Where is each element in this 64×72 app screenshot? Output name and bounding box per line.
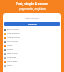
staticText: Mobile money <box>7 36 20 39</box>
button[interactable]: Direct debit <box>3 60 61 64</box>
staticText: Saved cards <box>7 52 18 55</box>
staticText: Bank transfer <box>7 28 20 31</box>
staticText: Fast, simple & secure <box>16 2 48 6</box>
button[interactable]: Scheduled <box>3 56 61 60</box>
button[interactable]: Card payment <box>3 32 61 36</box>
button[interactable]: Mobile money <box>3 36 61 40</box>
staticText: Continue <box>28 23 37 26</box>
button[interactable]: Continue <box>4 22 60 26</box>
button[interactable]: Cash pickup <box>3 40 61 44</box>
button[interactable]: Wallet <box>3 44 61 48</box>
button[interactable]: Bank transfer <box>3 28 61 32</box>
button[interactable]: Saved cards <box>3 52 61 56</box>
staticText: Direct debit <box>7 60 18 63</box>
staticText: Select method <box>3 17 61 20</box>
staticText: Cash pickup <box>7 40 18 43</box>
staticText: Other <box>7 64 13 67</box>
button[interactable]: Crypto <box>3 48 61 52</box>
staticText: Wallet <box>7 44 13 47</box>
staticText: payments, anytime <box>19 7 46 11</box>
button[interactable]: Other <box>3 64 61 68</box>
staticText: Scheduled <box>7 56 17 59</box>
staticText: Crypto <box>7 48 13 51</box>
staticText: Card payment <box>7 32 20 35</box>
